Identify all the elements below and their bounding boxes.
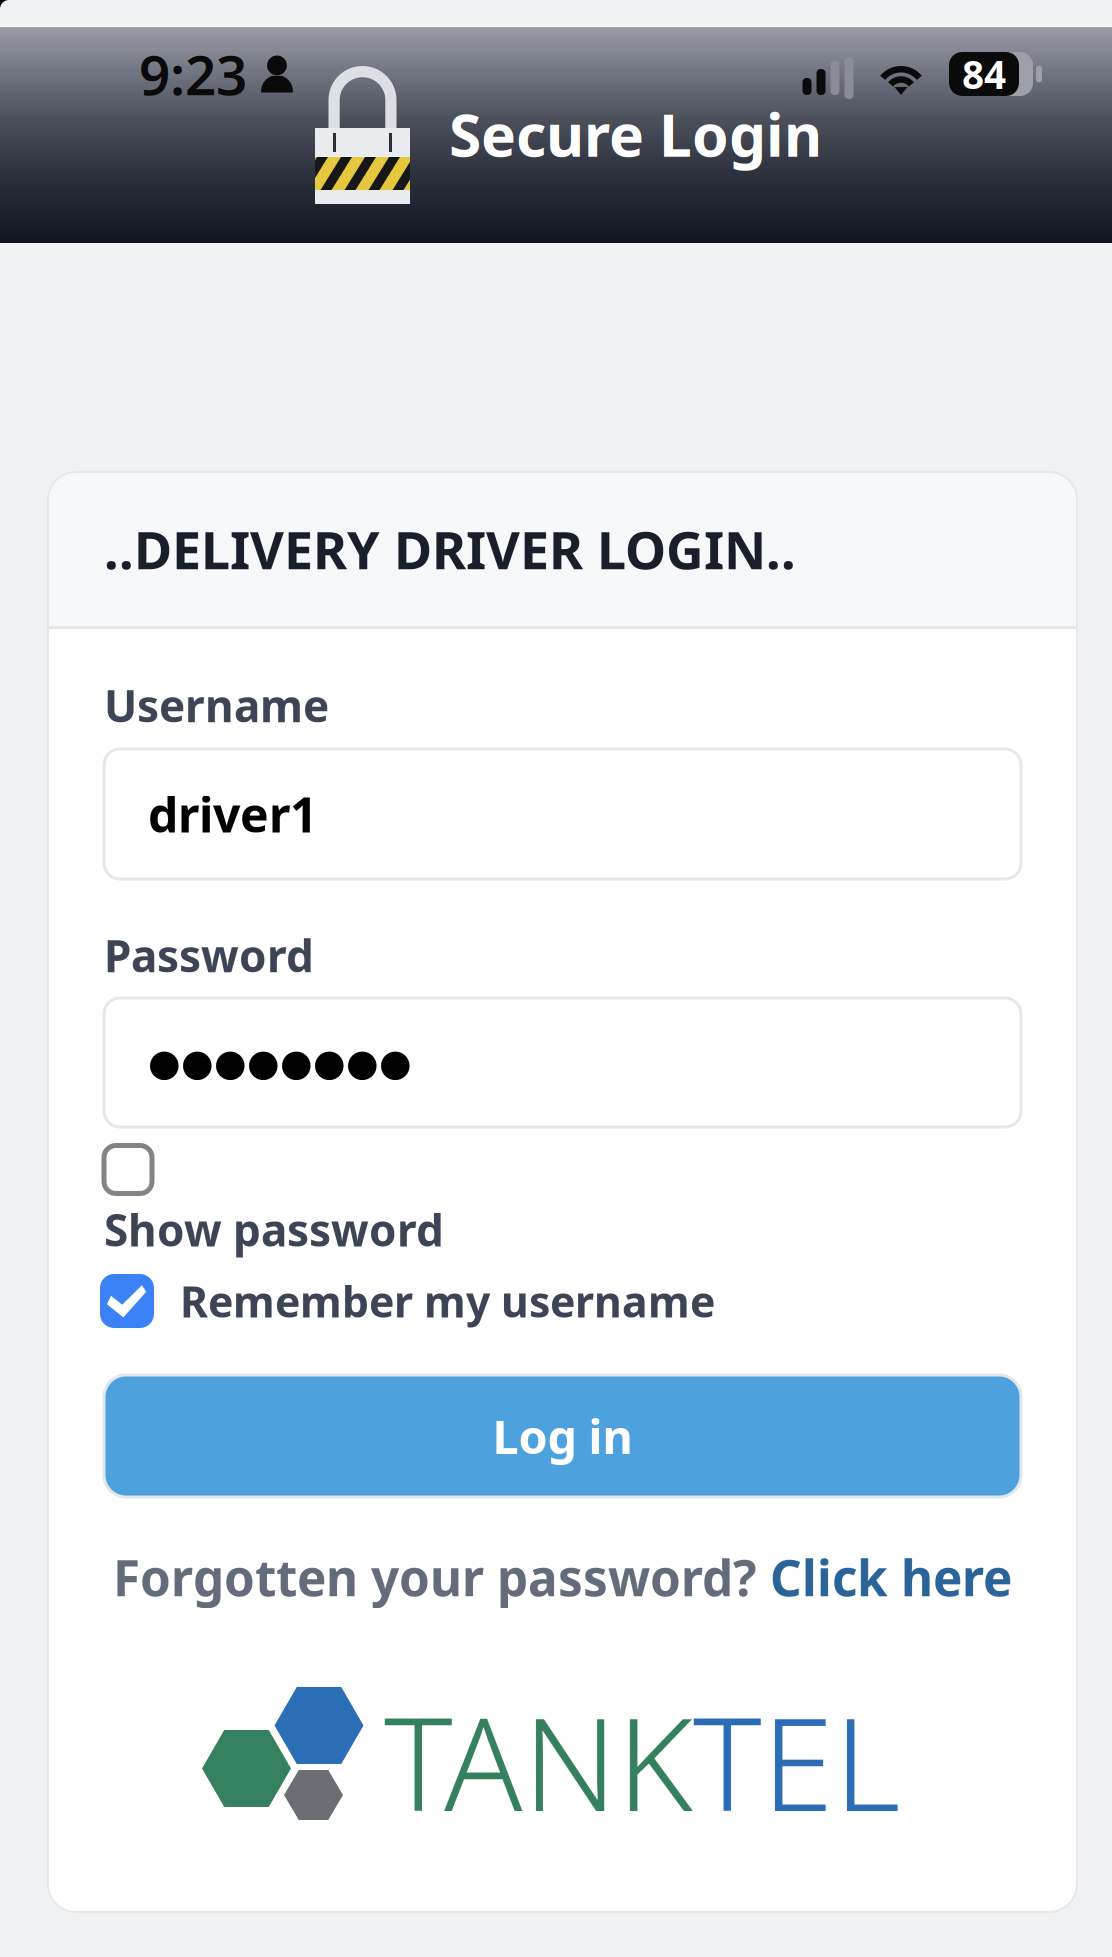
staticText: Show password — [104, 1200, 444, 1259]
button[interactable]: Forgotten your password? — [48, 1528, 1077, 1626]
staticText: ●●●●●●●● — [148, 1041, 412, 1084]
staticText: ..DELIVERY DRIVER LOGIN.. — [104, 514, 796, 584]
staticText: Secure Login — [449, 95, 822, 173]
staticText: TEL — [693, 1675, 901, 1847]
staticText: Password — [104, 926, 314, 984]
staticText: Remember my username — [180, 1273, 715, 1329]
staticText: 84 — [962, 48, 1006, 100]
staticText: driver1 — [148, 782, 317, 846]
button[interactable]: Log in — [104, 1375, 1021, 1497]
button[interactable]: Remember my username — [100, 1273, 715, 1329]
staticText: Log in — [492, 1405, 632, 1467]
staticText: Username — [104, 676, 329, 734]
staticText: Forgotten your password? — [113, 1544, 770, 1610]
staticText: Click here — [770, 1544, 1012, 1610]
button[interactable]: Show password — [104, 1145, 152, 1193]
staticText: 9:23 — [139, 38, 247, 110]
staticText: TANK — [384, 1675, 693, 1847]
